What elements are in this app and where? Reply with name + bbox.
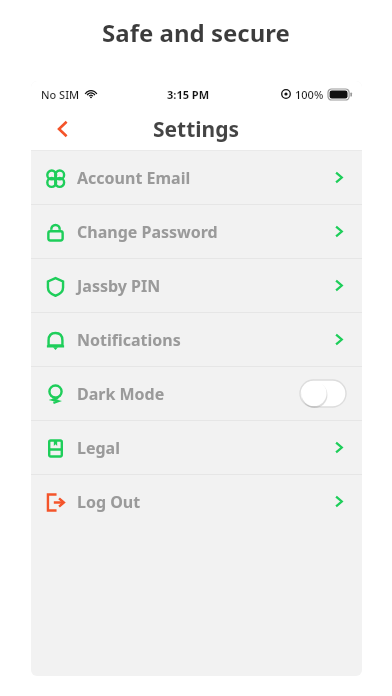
button[interactable]: Legal bbox=[31, 421, 362, 474]
staticText: 3:15 PM bbox=[167, 87, 210, 102]
button[interactable]: Back bbox=[45, 111, 81, 147]
staticText: Log Out bbox=[77, 491, 141, 513]
staticText: Legal bbox=[77, 437, 120, 459]
staticText: Safe and secure bbox=[102, 16, 290, 49]
staticText: Account Email bbox=[77, 167, 191, 189]
button[interactable]: Notifications bbox=[31, 313, 362, 366]
button[interactable]: Change Password bbox=[31, 205, 362, 258]
staticText: No SIM bbox=[41, 87, 80, 102]
button[interactable]: Jassby PIN bbox=[31, 259, 362, 312]
button[interactable]: Log Out bbox=[31, 475, 362, 528]
button[interactable]: Account Email bbox=[31, 151, 362, 204]
staticText: Dark Mode bbox=[77, 383, 165, 405]
staticText: Jassby PIN bbox=[77, 275, 161, 297]
staticText: Change Password bbox=[77, 221, 218, 243]
button[interactable]: Dark Mode bbox=[31, 367, 362, 420]
staticText: Settings bbox=[153, 115, 240, 144]
button[interactable]: Dark Mode toggle bbox=[300, 380, 346, 407]
staticText: 100% bbox=[295, 87, 324, 102]
staticText: Notifications bbox=[77, 329, 181, 351]
